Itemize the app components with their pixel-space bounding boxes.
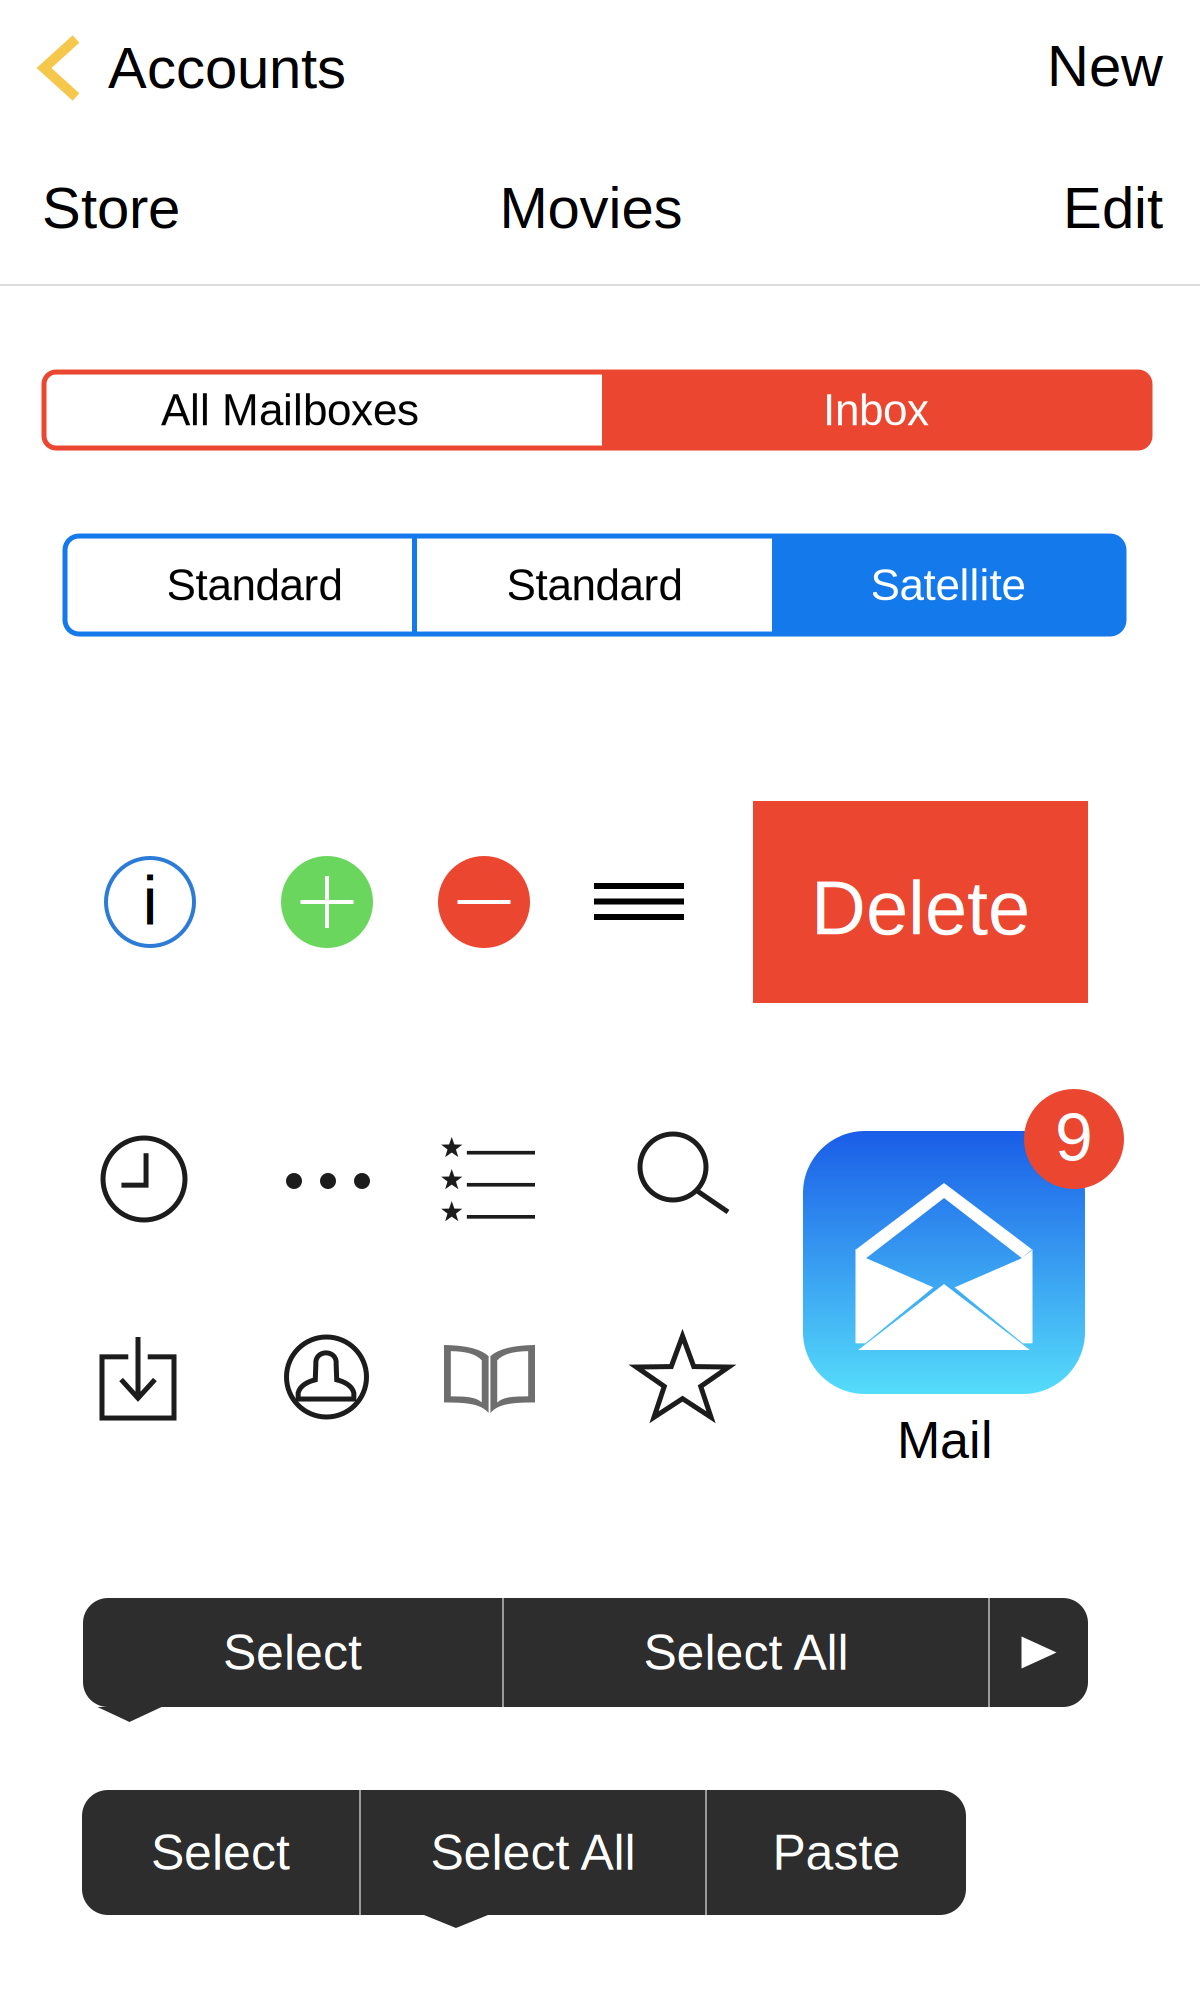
staticText: Mail — [897, 1411, 993, 1469]
button[interactable]: Remove — [438, 856, 530, 948]
button[interactable]: More info — [104, 856, 196, 948]
button[interactable]: Accounts — [44, 36, 464, 100]
button[interactable]: Delete — [753, 801, 1088, 1003]
button[interactable]: Standard — [65, 536, 412, 634]
button[interactable]: More — [1021, 1636, 1056, 1668]
button[interactable]: More — [286, 1173, 370, 1189]
button[interactable]: Bookshelf — [444, 1345, 535, 1413]
button[interactable]: Select All — [643, 1625, 848, 1680]
button[interactable]: Downloads — [102, 1337, 174, 1418]
button[interactable]: Add — [281, 856, 373, 948]
staticText: All Mailboxes — [161, 385, 419, 435]
button[interactable]: Search — [640, 1134, 728, 1212]
button[interactable]: Select All — [430, 1825, 635, 1880]
button[interactable]: Edit — [995, 176, 1163, 240]
staticText: New — [1047, 34, 1163, 98]
button[interactable]: Inbox — [602, 372, 1150, 448]
staticText: Select All — [643, 1625, 848, 1680]
staticText: Edit — [1063, 176, 1163, 240]
button[interactable]: Mail — [803, 1131, 1085, 1394]
staticText: Standard — [506, 560, 682, 610]
button[interactable]: Standard — [417, 536, 772, 634]
staticText: Satellite — [870, 560, 1025, 610]
button[interactable]: Favorites — [634, 1336, 731, 1420]
button[interactable]: Reorder — [594, 886, 684, 917]
button[interactable]: Featured — [441, 1138, 535, 1222]
staticText: Delete — [811, 865, 1030, 950]
button[interactable]: All Mailboxes — [44, 372, 602, 448]
staticText: Select All — [430, 1825, 635, 1880]
staticText: Accounts — [108, 36, 346, 100]
button[interactable]: Paste — [772, 1825, 900, 1880]
button[interactable]: Select — [223, 1625, 362, 1680]
staticText: Select — [151, 1825, 290, 1880]
staticText: Standard — [166, 560, 342, 610]
button[interactable]: Contacts — [284, 1337, 369, 1417]
staticText: Movies — [499, 176, 682, 240]
staticText: Inbox — [823, 385, 929, 435]
staticText: Store — [42, 176, 180, 240]
button[interactable]: Satellite — [772, 536, 1124, 634]
staticText: Select — [223, 1625, 362, 1680]
staticText: i — [142, 863, 157, 939]
button[interactable]: Store — [42, 176, 322, 240]
staticText: Paste — [772, 1825, 900, 1880]
button[interactable]: Recents — [102, 1138, 186, 1220]
button[interactable]: New — [995, 34, 1163, 98]
button[interactable]: Select — [151, 1825, 290, 1880]
staticText: 9 — [1055, 1099, 1093, 1175]
